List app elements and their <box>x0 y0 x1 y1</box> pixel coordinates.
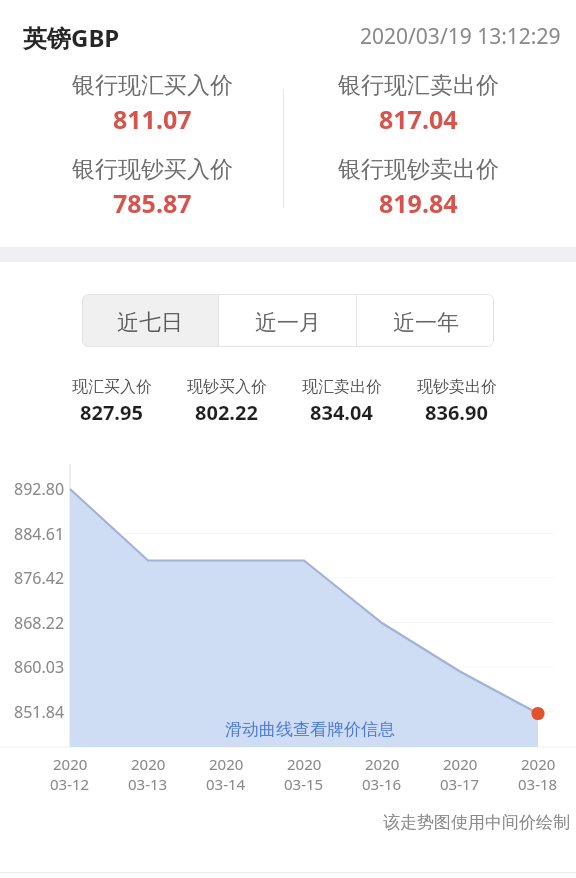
staticText: 银行现钞卖出价 <box>338 155 499 184</box>
button[interactable]: 现钞卖出价 <box>399 377 514 426</box>
staticText: 该走势图使用中间价绘制 <box>383 812 570 833</box>
staticText: 2020 <box>287 754 322 774</box>
staticText: 876.42 <box>14 567 65 589</box>
staticText: 785.87 <box>113 186 192 220</box>
staticText: 802.22 <box>195 399 258 426</box>
staticText: 2020 <box>131 754 166 774</box>
button[interactable]: 银行现钞买入价 <box>52 155 252 220</box>
button[interactable]: 近七日 <box>82 294 218 347</box>
staticText: 834.04 <box>310 399 373 426</box>
button[interactable]: 银行现钞卖出价 <box>318 155 518 220</box>
staticText: 03-18 <box>518 774 558 794</box>
staticText: 现钞买入价 <box>187 377 267 397</box>
button[interactable]: 现汇买入价 <box>54 377 169 426</box>
staticText: 860.03 <box>14 656 65 678</box>
button[interactable]: 现汇卖出价 <box>284 377 399 426</box>
staticText: 现汇买入价 <box>72 377 152 397</box>
staticText: 近七日 <box>117 309 183 337</box>
staticText: 2020 <box>521 754 556 774</box>
button[interactable]: 银行现汇买入价 <box>52 71 252 136</box>
staticText: 2020/03/19 13:12:29 <box>360 22 561 51</box>
button[interactable]: 银行现汇卖出价 <box>318 71 518 136</box>
staticText: 811.07 <box>113 102 192 136</box>
staticText: 892.80 <box>14 478 65 500</box>
staticText: 827.95 <box>80 399 143 426</box>
staticText: 03-14 <box>206 774 246 794</box>
staticText: 819.84 <box>379 186 458 220</box>
staticText: 03-16 <box>362 774 402 794</box>
staticText: 银行现钞买入价 <box>72 155 233 184</box>
staticText: 现钞卖出价 <box>417 377 497 397</box>
staticText: 银行现汇买入价 <box>72 71 233 100</box>
staticText: 现汇卖出价 <box>302 377 382 397</box>
staticText: 03-13 <box>128 774 168 794</box>
staticText: 近一月 <box>255 309 321 337</box>
button[interactable]: 近一年 <box>357 294 494 347</box>
staticText: 884.61 <box>14 523 65 545</box>
button[interactable]: Exchange rate trend chart <box>0 455 576 755</box>
staticText: 英镑GBP <box>23 21 120 54</box>
button[interactable]: 近一月 <box>219 294 356 347</box>
staticText: 滑动曲线查看牌价信息 <box>225 719 395 740</box>
staticText: 851.84 <box>14 701 65 723</box>
staticText: 03-12 <box>50 774 90 794</box>
staticText: 836.90 <box>425 399 488 426</box>
staticText: 近一年 <box>393 309 459 337</box>
staticText: 03-15 <box>284 774 324 794</box>
staticText: 2020 <box>443 754 478 774</box>
staticText: 03-17 <box>440 774 480 794</box>
staticText: 银行现汇卖出价 <box>338 71 499 100</box>
button[interactable]: 现钞买入价 <box>169 377 284 426</box>
staticText: 2020 <box>209 754 244 774</box>
staticText: 2020 <box>53 754 88 774</box>
staticText: 868.22 <box>14 612 65 634</box>
staticText: 2020 <box>365 754 400 774</box>
staticText: 817.04 <box>379 102 458 136</box>
